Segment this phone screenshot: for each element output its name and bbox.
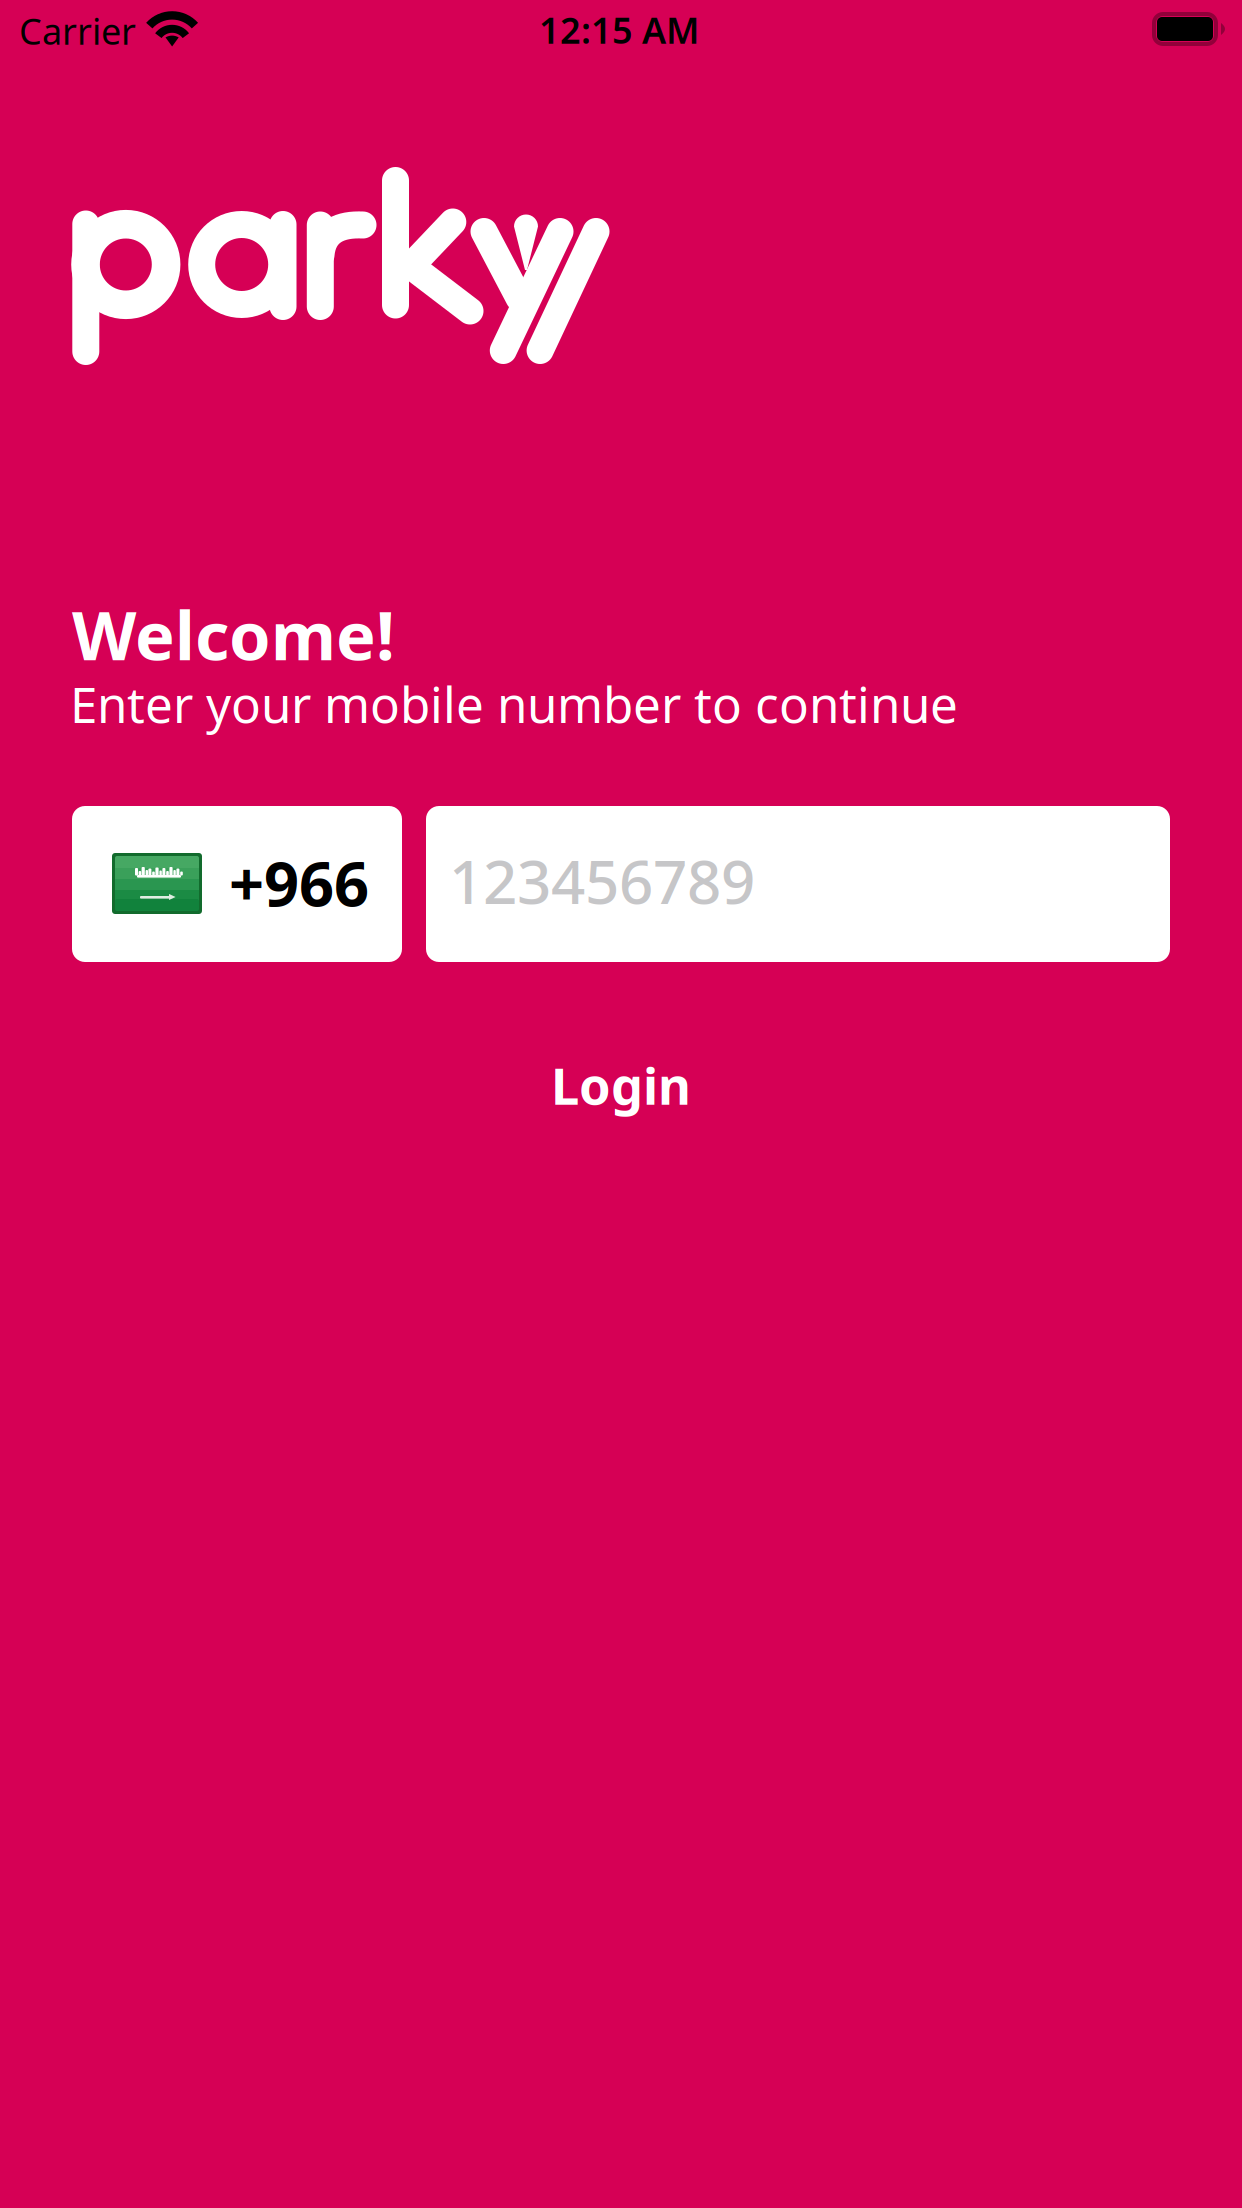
staticText: Enter your mobile number to continue — [70, 671, 958, 736]
button[interactable]: Country code, Saudi Arabia +966 — [72, 806, 402, 962]
button[interactable]: Login — [471, 1037, 771, 1133]
button[interactable]: Mobile number — [426, 806, 1170, 962]
staticText: 123456789 — [449, 841, 755, 921]
staticText: Carrier — [19, 7, 136, 55]
staticText: Login — [551, 1051, 691, 1119]
staticText: +966 — [229, 842, 369, 923]
staticText: 12:15 AM — [539, 6, 699, 54]
staticText: Welcome! — [72, 590, 395, 678]
